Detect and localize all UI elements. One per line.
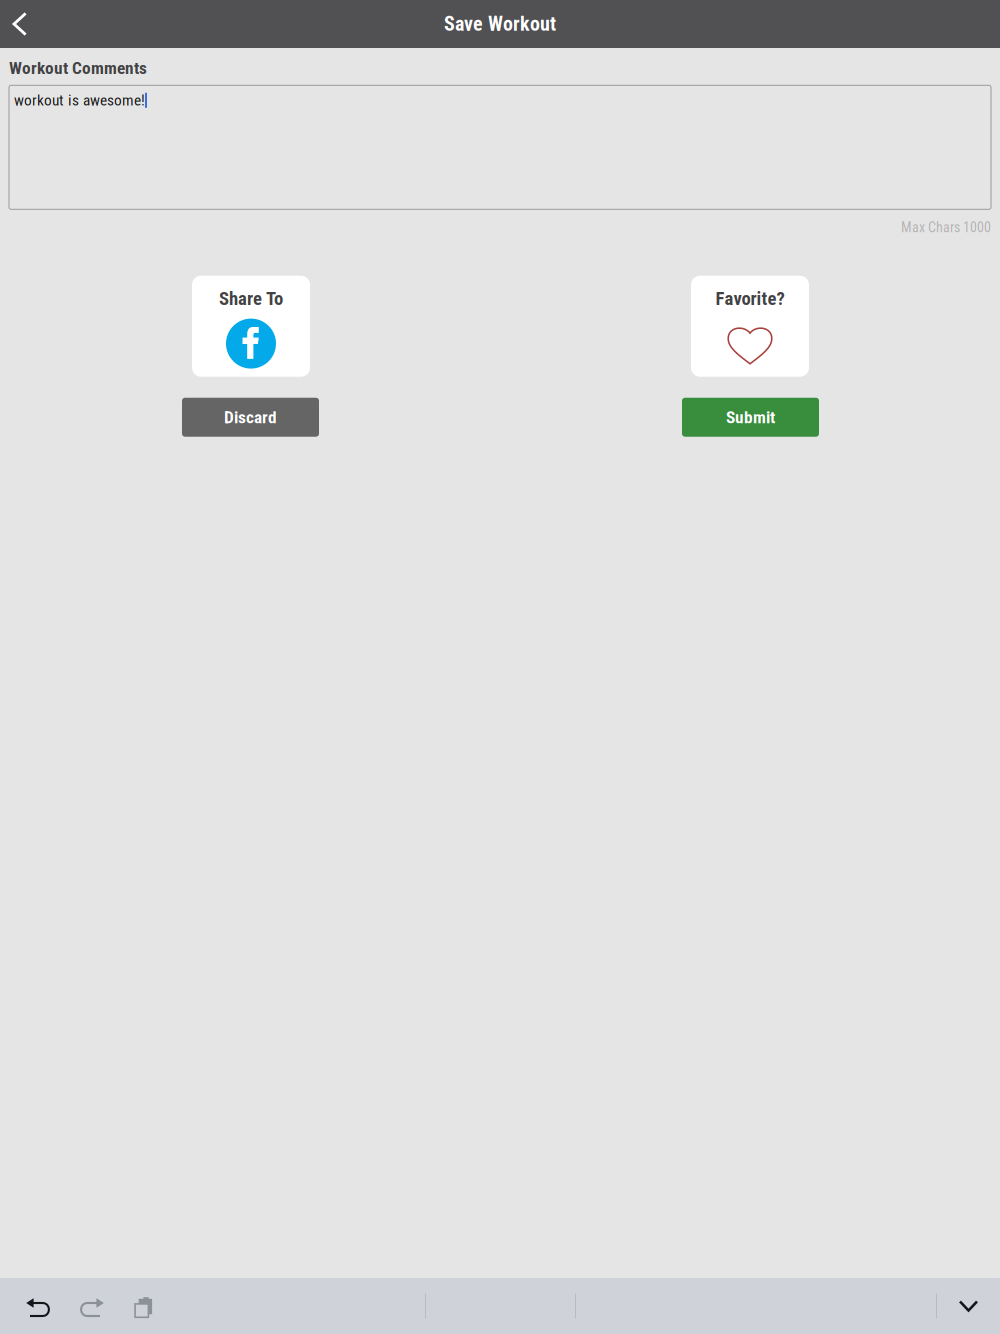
button[interactable]: Share To — [192, 276, 310, 377]
button[interactable]: Discard — [182, 398, 319, 437]
button[interactable]: Favorite? — [691, 276, 809, 377]
button[interactable]: Redo — [65, 1278, 118, 1334]
staticText: Workout Comments — [9, 58, 147, 78]
button[interactable]: Submit — [682, 398, 819, 437]
button[interactable]: Paste — [118, 1278, 171, 1334]
staticText: Discard — [224, 407, 277, 427]
staticText: Share To — [219, 288, 283, 310]
button[interactable]: Hide keyboard — [937, 1278, 1000, 1334]
staticText: Favorite? — [715, 288, 784, 310]
staticText: Save Workout — [444, 12, 556, 36]
staticText: workout is awesome! — [14, 91, 145, 109]
staticText: Submit — [726, 407, 775, 427]
staticText: Max Chars 1000 — [901, 219, 991, 236]
button[interactable]: Undo — [12, 1278, 65, 1334]
button[interactable]: Back — [0, 0, 40, 48]
